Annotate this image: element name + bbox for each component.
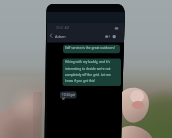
button[interactable]: Back xyxy=(46,32,55,41)
button[interactable]: Voice call xyxy=(111,32,120,41)
button[interactable]: Adam xyxy=(55,34,66,39)
button[interactable]: Video call xyxy=(103,32,112,41)
button[interactable]: 10:34 got it! xyxy=(62,93,77,101)
button[interactable]: Hiking with my buddy, and it's interesti… xyxy=(65,60,118,83)
staticText: 09:41 AM xyxy=(56,26,70,30)
button[interactable]: Self service is the great outdoors! xyxy=(65,46,118,50)
